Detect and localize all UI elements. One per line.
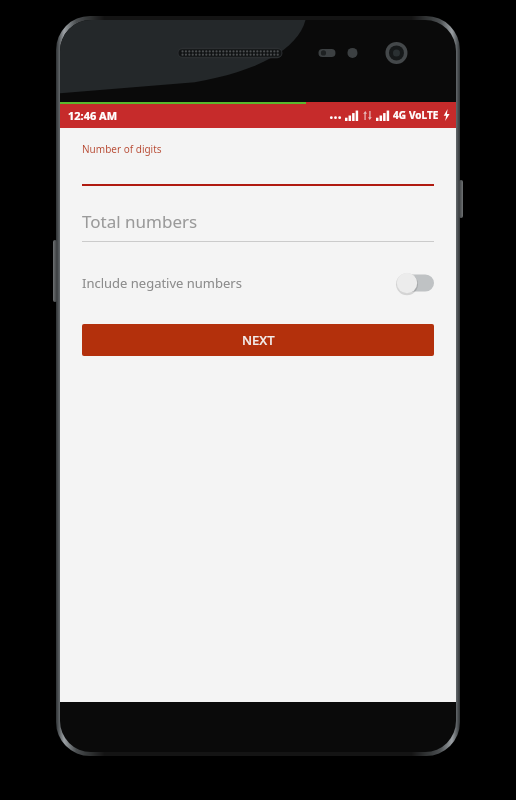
staticText: Number of digits xyxy=(82,142,162,156)
staticText: Total numbers xyxy=(82,210,198,233)
button[interactable]: Total numbers xyxy=(82,210,434,242)
button[interactable]: Include negative numbers toggle xyxy=(396,272,434,294)
staticText: 4G xyxy=(393,108,406,122)
button[interactable]: Number of digits xyxy=(82,142,434,186)
staticText: VoLTE xyxy=(409,108,439,122)
button[interactable]: Include negative numbers xyxy=(82,266,434,300)
staticText: NEXT xyxy=(242,331,275,349)
button[interactable]: NEXT xyxy=(82,324,434,356)
staticText: Include negative numbers xyxy=(82,274,242,292)
staticText: 12:46 AM xyxy=(68,108,118,123)
